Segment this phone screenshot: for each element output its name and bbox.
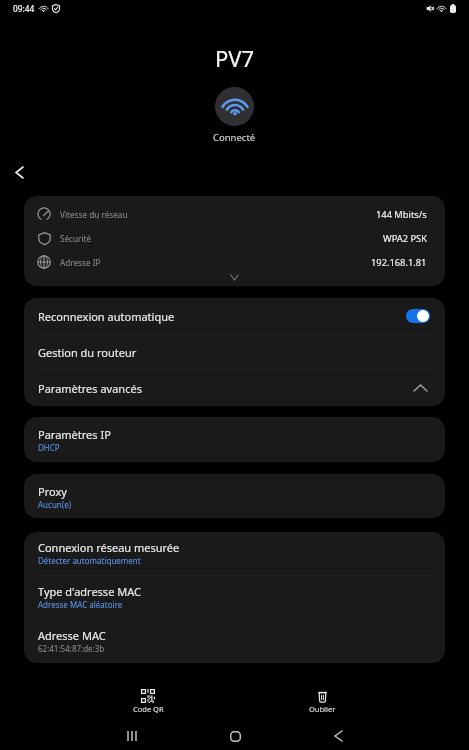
staticText: 62:41:54:87:de:3b [38,643,105,654]
staticText: Connecté [213,131,256,144]
button[interactable]: Type d'adresse MAC [24,576,445,619]
staticText: Proxy [38,484,67,499]
staticText: Adresse MAC [38,628,106,643]
button[interactable]: Paramètres IP [24,417,445,462]
staticText: Vitesse du réseau [60,209,376,220]
staticText: Reconnexion automatique [38,309,406,324]
staticText: WPA2 PSK [383,232,427,245]
staticText: Paramètres avancés [38,381,414,396]
button[interactable]: Paramètres avancés [24,370,445,406]
staticText: 192.168.1.81 [371,256,427,269]
button[interactable]: Oublier [235,682,409,714]
button[interactable]: Adresse MAC [24,620,445,663]
staticText: Aucun(e) [38,499,72,510]
button[interactable]: Back [319,722,357,750]
staticText: Code QR [133,704,164,714]
staticText: 09:44 [13,3,35,14]
staticText: Oublier [309,704,336,714]
button[interactable]: Code QR [61,682,235,714]
staticText: Détecter automatiquement [38,555,141,566]
staticText: Adresse IP [60,257,371,268]
staticText: 144 Mbits/s [376,208,427,221]
button[interactable]: Home [216,722,254,750]
button[interactable]: Connexion réseau mesurée [24,532,445,575]
staticText: DHCP [38,442,60,453]
button[interactable]: Reconnexion automatique [406,309,430,323]
button[interactable]: Back [3,156,36,189]
button[interactable]: Recent apps [113,722,151,750]
staticText: Sécurité [60,233,383,244]
staticText: Adresse MAC aléatoire [38,599,123,610]
staticText: Type d'adresse MAC [38,584,141,599]
button[interactable]: Proxy [24,474,445,518]
staticText: PV7 [215,43,255,73]
staticText: Paramètres IP [38,427,111,442]
staticText: Connexion réseau mesurée [38,540,180,555]
button[interactable]: Reconnexion automatique [24,298,445,334]
staticText: Gestion du routeur [38,345,137,360]
button[interactable]: Gestion du routeur [24,335,445,369]
